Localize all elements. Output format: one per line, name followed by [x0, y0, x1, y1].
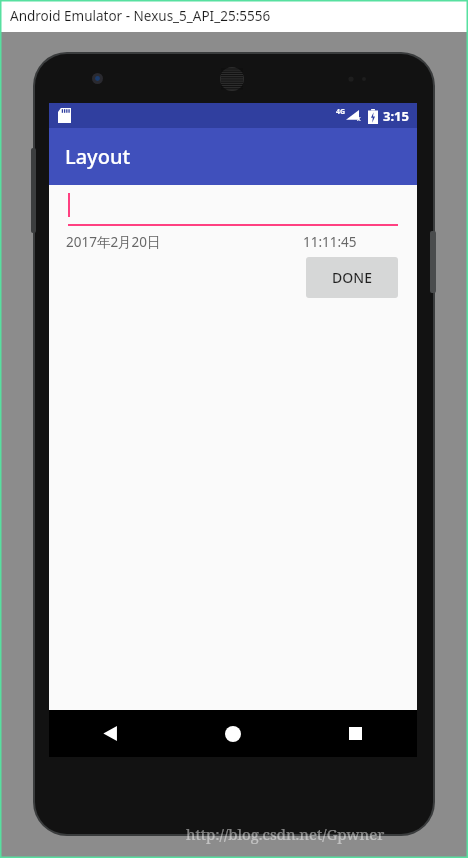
staticText: Layout — [65, 143, 131, 170]
staticText: 4G — [336, 107, 346, 117]
button[interactable]: Back — [49, 710, 171, 757]
staticText: 11:11:45 — [303, 233, 357, 251]
button[interactable] — [68, 190, 398, 226]
staticText: Android Emulator - Nexus_5_API_25:5556 — [10, 7, 271, 25]
button[interactable]: DONE — [306, 257, 398, 298]
staticText: DONE — [332, 268, 372, 287]
button[interactable]: Home — [171, 710, 294, 757]
staticText: 2017年2月20日 — [66, 233, 161, 251]
staticText: http://blog.csdn.net/Gpwner — [186, 824, 385, 844]
staticText: x — [357, 114, 361, 124]
button[interactable]: Recent apps — [294, 710, 417, 757]
staticText: 3:15 — [383, 107, 409, 125]
